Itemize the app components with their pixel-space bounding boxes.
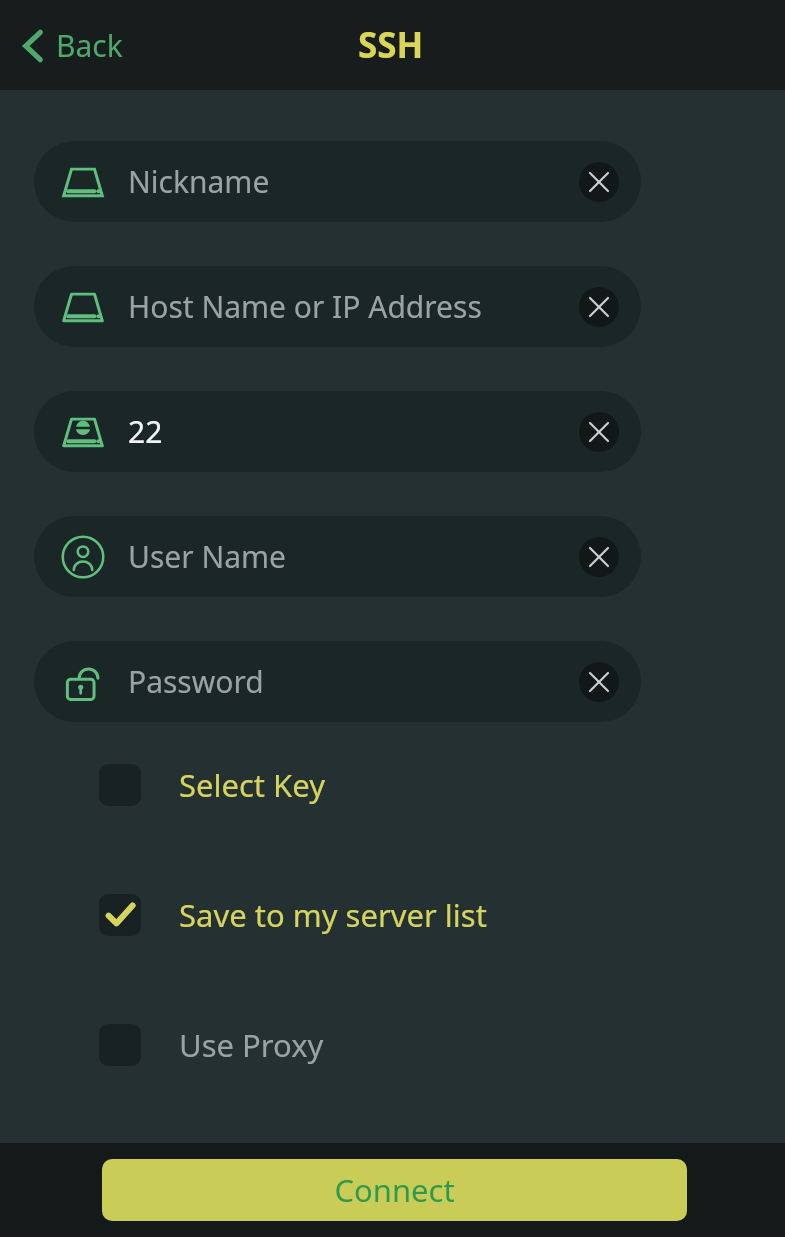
staticText: Connect — [334, 1169, 455, 1211]
button[interactable]: Host Name or IP Address — [34, 266, 641, 347]
button[interactable]: 22 — [34, 391, 641, 472]
staticText: SSH — [358, 21, 424, 69]
button[interactable]: Clear Nickname — [579, 162, 619, 202]
button[interactable]: Use Proxy — [99, 1024, 324, 1066]
button[interactable]: Select Key — [99, 764, 325, 806]
button[interactable]: Back — [14, 19, 129, 72]
staticText: Host Name or IP Address — [128, 286, 579, 327]
button[interactable]: User Name — [34, 516, 641, 597]
staticText: User Name — [128, 536, 579, 577]
staticText: 22 — [128, 411, 579, 452]
button[interactable]: Save to my server list — [99, 894, 487, 936]
button[interactable]: Clear User Name — [579, 537, 619, 577]
button[interactable]: Password — [34, 641, 641, 722]
button[interactable]: Clear Host Name or IP Address — [579, 287, 619, 327]
button[interactable]: Clear Password — [579, 662, 619, 702]
staticText: Back — [56, 25, 123, 66]
staticText: Save to my server list — [179, 894, 487, 936]
staticText: Password — [128, 661, 579, 702]
button[interactable]: Clear 22 — [579, 412, 619, 452]
button[interactable]: Connect — [102, 1159, 687, 1221]
staticText: Nickname — [128, 161, 579, 202]
staticText: Select Key — [179, 764, 325, 806]
button[interactable]: Nickname — [34, 141, 641, 222]
staticText: Use Proxy — [179, 1024, 324, 1066]
